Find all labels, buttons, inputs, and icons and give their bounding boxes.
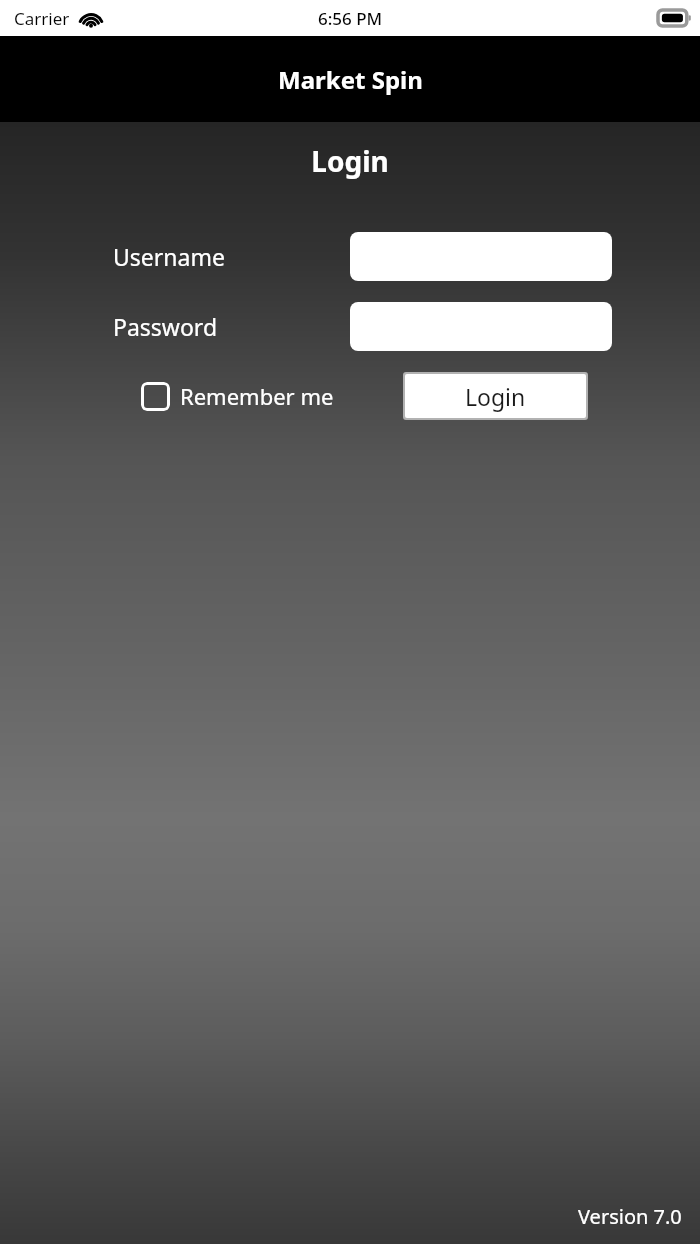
- button[interactable]: Username: [350, 232, 612, 281]
- staticText: Login: [311, 142, 389, 180]
- staticText: Login: [465, 381, 526, 412]
- staticText: Carrier: [14, 7, 70, 30]
- button[interactable]: Password: [350, 302, 612, 351]
- button[interactable]: Remember me: [141, 381, 334, 411]
- staticText: Market Spin: [278, 63, 423, 96]
- staticText: Remember me: [180, 381, 334, 411]
- staticText: Version 7.0: [578, 1203, 682, 1230]
- staticText: Username: [113, 241, 350, 272]
- staticText: Password: [113, 311, 350, 342]
- button[interactable]: Login: [405, 374, 586, 418]
- staticText: 6:56 PM: [318, 7, 383, 30]
